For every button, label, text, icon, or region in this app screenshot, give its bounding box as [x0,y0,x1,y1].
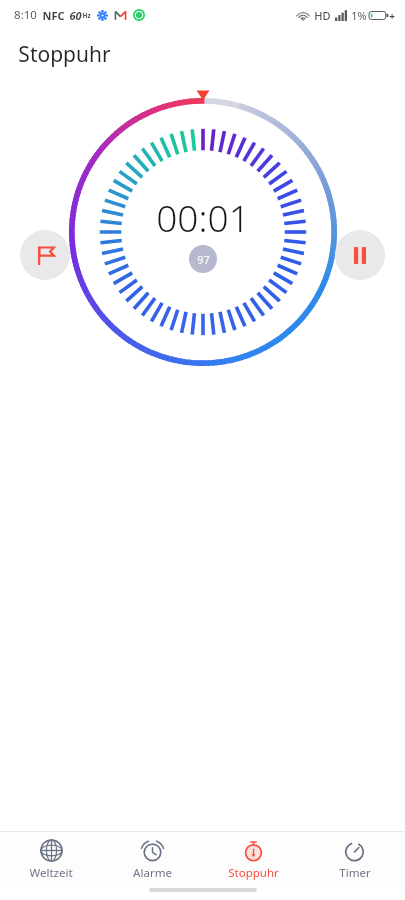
staticText: Hz [82,11,91,20]
staticText: 97 [197,252,210,267]
button[interactable]: Lap [20,230,70,280]
staticText: Alarme [133,865,172,881]
staticText: Stoppuhr [228,865,279,881]
staticText: Timer [339,865,371,881]
staticText: NFC [42,8,65,23]
staticText: Stoppuhr [18,40,111,69]
button[interactable]: Stoppuhr [203,832,304,888]
staticText: HD [314,8,331,23]
staticText: 8:10 [14,7,37,23]
button[interactable]: Pause [335,230,385,280]
staticText: 60 [69,8,82,23]
staticText: 1% [351,8,367,23]
button[interactable]: Weltzeit [0,832,102,888]
staticText: + [389,9,395,23]
staticText: 00:01 [156,192,250,242]
staticText: Weltzeit [29,865,73,881]
button[interactable]: Alarme [102,832,203,888]
button[interactable]: Timer [304,832,405,888]
